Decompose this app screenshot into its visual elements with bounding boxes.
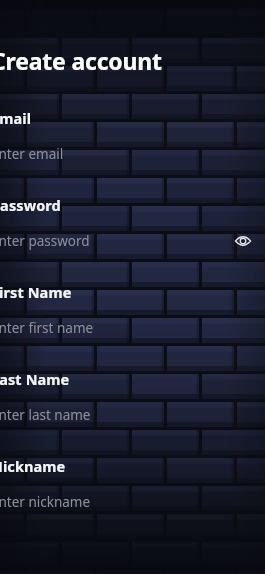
button[interactable]: Enter first name — [0, 311, 256, 345]
staticText: Enter last name — [0, 406, 91, 424]
staticText: Email — [0, 108, 32, 128]
staticText: Enter first name — [0, 319, 94, 337]
button[interactable]: Toggle password visibility — [230, 228, 256, 254]
button[interactable]: Enter email — [0, 137, 256, 171]
staticText: Enter password — [0, 232, 90, 250]
staticText: Password — [0, 195, 61, 215]
staticText: Create account — [0, 45, 162, 76]
staticText: Enter email — [0, 145, 64, 163]
staticText: Last Name — [0, 369, 70, 389]
button[interactable]: Enter password — [0, 224, 256, 258]
button[interactable]: Enter last name — [0, 398, 256, 432]
button[interactable]: Enter nickname — [0, 485, 256, 519]
staticText: Enter nickname — [0, 493, 91, 511]
staticText: First Name — [0, 282, 72, 302]
staticText: Nickname — [0, 456, 66, 476]
